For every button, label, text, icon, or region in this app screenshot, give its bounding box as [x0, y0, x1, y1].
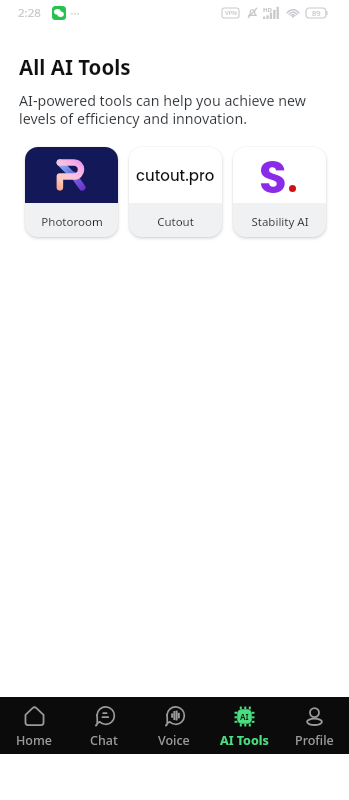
staticText: Cutout: [157, 214, 194, 230]
button[interactable]: Chat: [69, 697, 139, 754]
other: Chat: [94, 706, 115, 727]
other: Home: [24, 706, 45, 727]
button[interactable]: Profile: [279, 697, 349, 754]
button[interactable]: Voice: [139, 697, 209, 754]
staticText: Chat: [90, 732, 118, 749]
staticText: 2:28: [18, 5, 41, 21]
staticText: AI Tools: [220, 732, 269, 749]
staticText: Profile: [295, 732, 334, 749]
button[interactable]: Home: [0, 697, 69, 754]
button[interactable]: cutout.pro: [129, 147, 222, 237]
staticText: AI: [240, 711, 249, 722]
staticText: VPN: [225, 9, 237, 17]
staticText: All AI Tools: [19, 53, 131, 81]
staticText: Stability AI: [251, 214, 309, 230]
staticText: Home: [16, 732, 53, 749]
staticText: 89: [312, 8, 321, 18]
other: Voice: [164, 706, 185, 727]
other: Profile: [304, 706, 325, 727]
staticText: S: [259, 147, 287, 202]
staticText: HD: [263, 6, 272, 14]
staticText: Photoroom: [41, 214, 103, 230]
button[interactable]: Photoroom: [25, 147, 118, 237]
button[interactable]: AI Tools: [209, 697, 279, 754]
other: AI Tools: [234, 706, 255, 727]
staticText: Voice: [158, 732, 190, 749]
button[interactable]: S: [233, 147, 326, 237]
staticText: cutout.pro: [136, 165, 215, 186]
staticText: AI-powered tools can help you achieve ne…: [19, 91, 306, 128]
